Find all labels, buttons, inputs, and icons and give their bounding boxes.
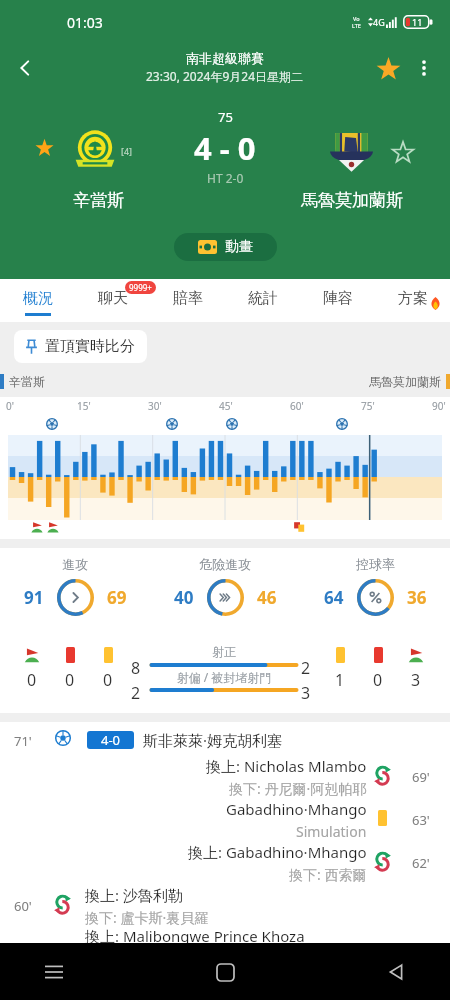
staticText: 60' — [14, 897, 32, 915]
staticText: Vo — [353, 15, 360, 22]
staticText: 01:03 — [67, 13, 103, 32]
button[interactable]: 概況 — [0, 281, 75, 324]
staticText: 換下: 盧卡斯·裏貝羅 — [85, 908, 209, 927]
button[interactable]: 陣容 — [300, 281, 375, 324]
staticText: 36 — [407, 586, 427, 609]
staticText: 90' — [432, 399, 446, 413]
staticText: 63' — [412, 811, 430, 829]
staticText: 75 — [218, 108, 233, 126]
button[interactable]: 71' — [0, 722, 450, 754]
staticText: 辛當斯 — [9, 374, 45, 389]
staticText: 46 — [257, 586, 277, 609]
staticText: 換上: 沙魯利勒 — [85, 885, 183, 905]
staticText: 64 — [324, 586, 344, 609]
staticText: 辛當斯 — [73, 190, 124, 211]
staticText: 23:30, 2024年9月24日星期二 — [146, 68, 304, 84]
button[interactable]: 動畫 — [174, 233, 277, 261]
staticText: 聊天 — [98, 289, 128, 308]
staticText: 3 — [411, 669, 421, 691]
staticText: 4 - 0 — [194, 127, 256, 169]
staticText: 11 — [412, 16, 423, 28]
staticText: 45' — [219, 399, 233, 413]
button[interactable]: 置頂實時比分 — [14, 330, 147, 363]
staticText: 15' — [77, 399, 91, 413]
staticText: 2 — [131, 682, 141, 704]
staticText: 進攻 — [62, 556, 88, 572]
button[interactable]: 聊天 — [75, 281, 150, 324]
button[interactable]: 統計 — [225, 281, 300, 324]
staticText: 62' — [412, 854, 430, 872]
staticText: 91 — [24, 586, 44, 609]
staticText: 9999+ — [129, 282, 152, 293]
staticText: 4G — [373, 16, 385, 28]
staticText: Gabadhino·Mhango — [226, 799, 367, 819]
staticText: 40 — [174, 586, 194, 609]
staticText: 動畫 — [225, 238, 253, 256]
staticText: 1 — [335, 669, 345, 691]
staticText: 換上: Gabadhino·Mhango — [188, 842, 367, 862]
staticText: 概況 — [23, 289, 53, 308]
button[interactable]: Home — [201, 948, 249, 996]
button[interactable]: More options — [406, 50, 442, 86]
staticText: 統計 — [248, 289, 278, 308]
staticText: LTE — [352, 22, 361, 29]
staticText: 馬魯莫加蘭斯 — [369, 374, 441, 389]
staticText: 3 — [301, 682, 311, 704]
staticText: 置頂實時比分 — [45, 337, 135, 356]
staticText: 69' — [412, 768, 430, 786]
staticText: 0 — [27, 669, 37, 691]
button[interactable]: 換上: Gabadhino·Mhango — [0, 840, 450, 883]
staticText: 南非超級聯賽 — [186, 50, 264, 66]
staticText: 射偏 / 被封堵射門 — [150, 669, 298, 685]
button[interactable]: Gabadhino·Mhango — [0, 797, 450, 840]
button[interactable]: Back — [372, 948, 420, 996]
button[interactable]: Recent apps — [30, 948, 78, 996]
staticText: 換上: Malibongwe Prince Khoza — [85, 926, 305, 943]
staticText: 方案 — [398, 289, 428, 308]
staticText: 75' — [361, 399, 375, 413]
staticText: 0' — [6, 399, 14, 413]
staticText: 危險進攻 — [199, 556, 251, 572]
button[interactable]: 方案 — [375, 281, 450, 324]
staticText: 8 — [131, 657, 141, 679]
staticText: 換下: 丹尼爾·阿剋帕耶 — [229, 779, 367, 798]
staticText: 陣容 — [323, 289, 353, 308]
staticText: 賠率 — [173, 289, 203, 308]
staticText: 換下: 西索爾 — [289, 865, 367, 884]
staticText: 0 — [65, 669, 75, 691]
staticText: 4-0 — [101, 731, 121, 749]
staticText: 0 — [373, 669, 383, 691]
staticText: 30' — [148, 399, 162, 413]
button[interactable]: 賠率 — [150, 281, 225, 324]
staticText: [4] — [121, 145, 133, 157]
button[interactable]: 換上: Nicholas Mlambo — [0, 754, 450, 797]
staticText: 馬魯莫加蘭斯 — [301, 190, 403, 211]
staticText: 60' — [290, 399, 304, 413]
staticText: HT 2-0 — [207, 170, 244, 186]
staticText: 控球率 — [356, 556, 395, 572]
button[interactable]: Favourite — [370, 50, 406, 86]
staticText: 71' — [14, 732, 32, 750]
staticText: Simulation — [296, 822, 367, 841]
button[interactable]: 60' — [0, 883, 450, 926]
staticText: 斯非萊萊·姆克胡利塞 — [143, 730, 283, 750]
staticText: 69 — [107, 586, 127, 609]
staticText: 2 — [301, 657, 311, 679]
button[interactable]: Back — [4, 47, 46, 89]
staticText: 0 — [103, 669, 113, 691]
staticText: 換上: Nicholas Mlambo — [206, 756, 367, 776]
staticText: 射正 — [150, 644, 298, 659]
